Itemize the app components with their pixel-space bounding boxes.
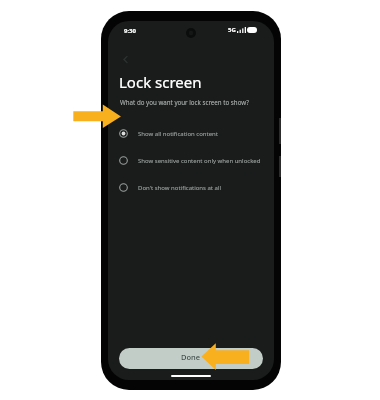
button[interactable]: Show all notification content [108, 120, 274, 147]
button[interactable]: Don't show notifications at all [108, 174, 274, 201]
staticText: Show sensitive content only when unlocke… [138, 157, 261, 165]
staticText: Show all notification content [138, 130, 218, 138]
button[interactable]: Done [119, 348, 263, 369]
staticText: Lock screen [119, 72, 202, 92]
button[interactable]: Show sensitive content only when unlocke… [108, 147, 274, 174]
staticText: Don't show notifications at all [138, 184, 222, 192]
button[interactable]: Back [119, 53, 132, 66]
staticText: Done [181, 352, 201, 362]
staticText: 9:30 [124, 27, 136, 35]
staticText: 5G [228, 26, 236, 34]
staticText: What do you want your lock screen to sho… [120, 98, 249, 106]
